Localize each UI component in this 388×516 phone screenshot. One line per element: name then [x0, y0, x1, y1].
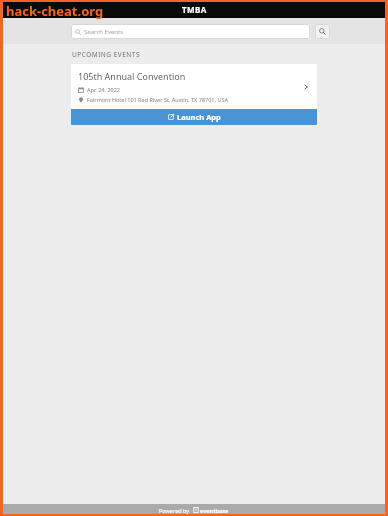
- staticText: hack-cheat.org: [6, 2, 104, 20]
- staticText: TMBA: [182, 4, 207, 15]
- staticText: UPCOMING EVENTS: [72, 50, 140, 59]
- staticText: eventbase: [200, 507, 229, 514]
- staticText: Launch App: [177, 112, 221, 122]
- staticText: 105th Annual Convention: [78, 70, 186, 82]
- staticText: Apr. 24, 2022: [87, 86, 120, 93]
- button[interactable]: Search: [315, 24, 330, 39]
- button[interactable]: Launch App: [71, 109, 317, 125]
- staticText: Powered by: [159, 507, 190, 514]
- button[interactable]: 105th Annual Convention: [71, 64, 317, 109]
- staticText: Fairmont Hotel 101 Red River St, Austin,…: [87, 96, 228, 103]
- staticText: Search Events: [84, 28, 124, 36]
- button[interactable]: Search Events: [71, 24, 310, 39]
